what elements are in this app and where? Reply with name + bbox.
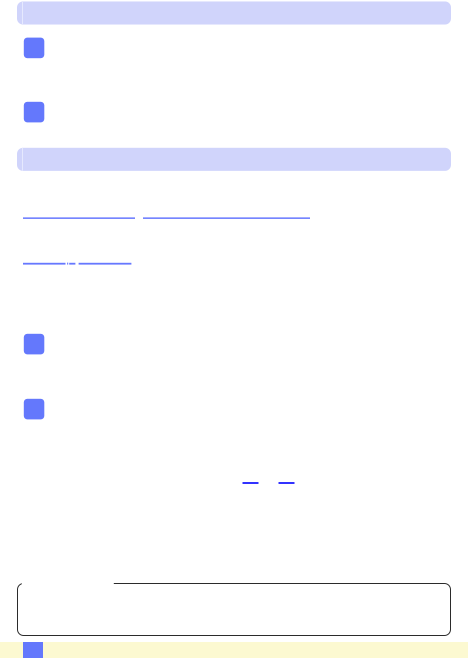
button[interactable]: Option 1 [0, 0, 20, 21]
button[interactable]: Link 3 [0, 0, 42, 2]
button[interactable]: Link 1 [0, 0, 112, 1]
button[interactable]: Option 4 [0, 0, 20, 21]
button[interactable]: Link 4 [0, 0, 53, 2]
button[interactable]: Option 2 [0, 0, 20, 21]
button[interactable]: Link 2 [0, 0, 167, 1]
button[interactable]: Option 3 [0, 0, 20, 21]
